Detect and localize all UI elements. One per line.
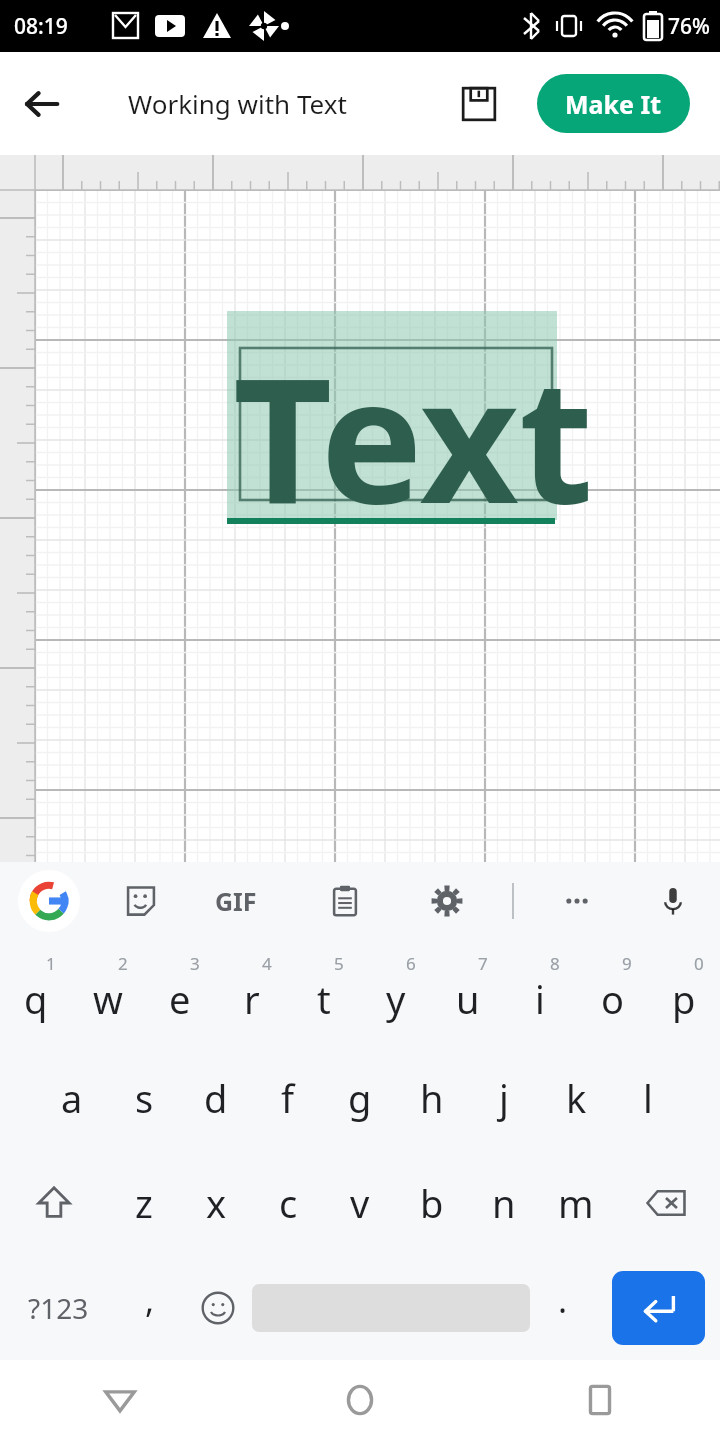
button[interactable]: l	[612, 1045, 684, 1150]
staticText: 08:19	[14, 12, 68, 41]
button[interactable]: Home	[240, 1360, 480, 1440]
button[interactable]: c	[252, 1150, 324, 1255]
button[interactable]: f	[252, 1045, 324, 1150]
staticText: b	[420, 1177, 444, 1229]
staticText: r	[244, 973, 260, 1025]
staticText: c	[279, 1177, 298, 1229]
staticText: w	[93, 973, 123, 1025]
button[interactable]: 4	[216, 940, 288, 1045]
button[interactable]: Voice input	[644, 872, 702, 930]
button[interactable]: a	[36, 1045, 108, 1150]
button[interactable]: b	[396, 1150, 468, 1255]
staticText: 0	[694, 952, 704, 975]
button[interactable]: Text	[0, 155, 720, 862]
staticText: z	[135, 1177, 153, 1229]
button[interactable]: 5	[288, 940, 360, 1045]
button[interactable]: Google search	[18, 870, 80, 932]
staticText: f	[281, 1072, 295, 1124]
staticText: Make It	[565, 87, 662, 121]
button[interactable]: 8	[504, 940, 576, 1045]
button[interactable]: g	[324, 1045, 396, 1150]
button[interactable]: 2	[72, 940, 144, 1045]
staticText: h	[420, 1072, 444, 1124]
button[interactable]: ?123	[0, 1255, 117, 1360]
staticText: y	[386, 973, 406, 1025]
button[interactable]: s	[108, 1045, 180, 1150]
button[interactable]: Make It	[537, 74, 690, 133]
staticText: 1	[46, 952, 56, 975]
staticText: 6	[406, 952, 416, 975]
staticText: q	[24, 973, 48, 1025]
staticText: k	[566, 1072, 587, 1124]
button[interactable]: Recent apps	[480, 1360, 720, 1440]
staticText: 5	[334, 952, 344, 975]
button[interactable]: k	[540, 1045, 612, 1150]
staticText: ,	[145, 1277, 155, 1323]
staticText: u	[456, 973, 480, 1025]
button[interactable]: More options	[548, 872, 606, 930]
button[interactable]: GIF	[215, 884, 257, 918]
staticText: Text	[233, 319, 594, 553]
button[interactable]: j	[468, 1045, 540, 1150]
staticText: o	[601, 973, 624, 1025]
staticText: x	[206, 1177, 227, 1229]
button[interactable]: 7	[432, 940, 504, 1045]
staticText: m	[558, 1177, 594, 1229]
staticText: .	[558, 1277, 568, 1323]
button[interactable]: ,	[117, 1255, 183, 1360]
staticText: ?123	[28, 1289, 89, 1327]
button[interactable]: 0	[648, 940, 720, 1045]
staticText: d	[204, 1072, 228, 1124]
button[interactable]: .	[530, 1255, 596, 1360]
staticText: p	[672, 973, 696, 1025]
staticText: 9	[622, 952, 632, 975]
button[interactable]: 6	[360, 940, 432, 1045]
button[interactable]: Save	[448, 73, 510, 135]
staticText: 76%	[668, 12, 710, 41]
staticText: t	[317, 973, 331, 1025]
button[interactable]: Settings	[418, 872, 476, 930]
staticText: g	[348, 1072, 372, 1124]
button[interactable]: Clipboard	[316, 872, 374, 930]
button[interactable]: v	[324, 1150, 396, 1255]
button[interactable]: Back	[0, 1360, 240, 1440]
button[interactable]: Backspace	[612, 1150, 720, 1255]
button[interactable]: n	[468, 1150, 540, 1255]
button[interactable]: 1	[0, 940, 72, 1045]
button[interactable]: 3	[144, 940, 216, 1045]
button[interactable]: m	[540, 1150, 612, 1255]
staticText: s	[135, 1072, 154, 1124]
staticText: Working with Text	[128, 86, 347, 121]
staticText: i	[535, 973, 545, 1025]
staticText: l	[643, 1072, 653, 1124]
staticText: e	[169, 973, 191, 1025]
staticText: j	[499, 1072, 509, 1124]
button[interactable]: d	[180, 1045, 252, 1150]
button[interactable]: Enter	[612, 1271, 705, 1345]
staticText: 2	[118, 952, 128, 975]
staticText: 7	[478, 952, 488, 975]
button[interactable]: 9	[576, 940, 648, 1045]
button[interactable]: Back	[12, 74, 72, 134]
staticText: v	[350, 1177, 370, 1229]
staticText: n	[492, 1177, 516, 1229]
staticText: 8	[550, 952, 560, 975]
staticText: a	[61, 1072, 83, 1124]
button[interactable]: Emoji	[183, 1255, 252, 1360]
staticText: 3	[190, 952, 200, 975]
button[interactable]: x	[180, 1150, 252, 1255]
button[interactable]: Shift	[0, 1150, 108, 1255]
button[interactable]: z	[108, 1150, 180, 1255]
button[interactable]: h	[396, 1045, 468, 1150]
button[interactable]: Stickers	[112, 872, 170, 930]
staticText: 4	[262, 952, 272, 975]
